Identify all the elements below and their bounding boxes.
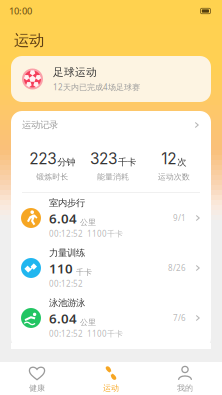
staticText: 能量消耗: [97, 172, 129, 182]
button[interactable]: 我的: [148, 362, 222, 395]
staticText: 6.04: [49, 310, 77, 327]
staticText: 运动: [14, 31, 44, 50]
staticText: 223: [29, 149, 56, 168]
staticText: 泳池游泳: [49, 297, 85, 309]
staticText: 运动次数: [158, 172, 190, 182]
staticText: 00:12:52 1100千卡: [49, 228, 123, 239]
button[interactable]: 运动: [74, 362, 148, 395]
button[interactable]: 运动记录: [11, 111, 211, 139]
staticText: 运动: [103, 383, 119, 393]
staticText: 00:12:52 1100千卡: [49, 328, 123, 339]
staticText: 运动记录: [22, 119, 58, 131]
staticText: 分钟: [57, 156, 75, 168]
staticText: 323: [90, 149, 117, 168]
staticText: 10:00: [9, 5, 32, 17]
staticText: 健康: [29, 383, 45, 393]
button[interactable]: 室内步行: [11, 193, 211, 243]
staticText: 9/1: [173, 213, 186, 223]
staticText: 7/6: [173, 313, 186, 323]
staticText: 6.04: [49, 210, 77, 227]
button[interactable]: 泳池游泳: [11, 293, 211, 343]
button[interactable]: 足球运动: [11, 56, 211, 102]
staticText: 公里: [80, 317, 96, 327]
staticText: 室内步行: [49, 197, 85, 209]
staticText: 12: [161, 149, 176, 168]
staticText: 我的: [177, 383, 193, 393]
button[interactable]: 力量训练: [11, 243, 211, 293]
staticText: 12天内已完成4场足球赛: [53, 82, 140, 92]
staticText: 千卡: [118, 156, 136, 168]
staticText: 力量训练: [49, 247, 85, 259]
staticText: 次: [177, 156, 186, 168]
staticText: 公里: [80, 217, 96, 227]
staticText: 110: [49, 260, 73, 277]
staticText: 千卡: [76, 267, 92, 277]
staticText: 00:12:52: [49, 278, 83, 289]
button[interactable]: 健康: [0, 362, 74, 395]
staticText: 8/26: [168, 263, 186, 273]
staticText: 足球运动: [53, 66, 97, 79]
staticText: 锻炼时长: [36, 172, 68, 182]
